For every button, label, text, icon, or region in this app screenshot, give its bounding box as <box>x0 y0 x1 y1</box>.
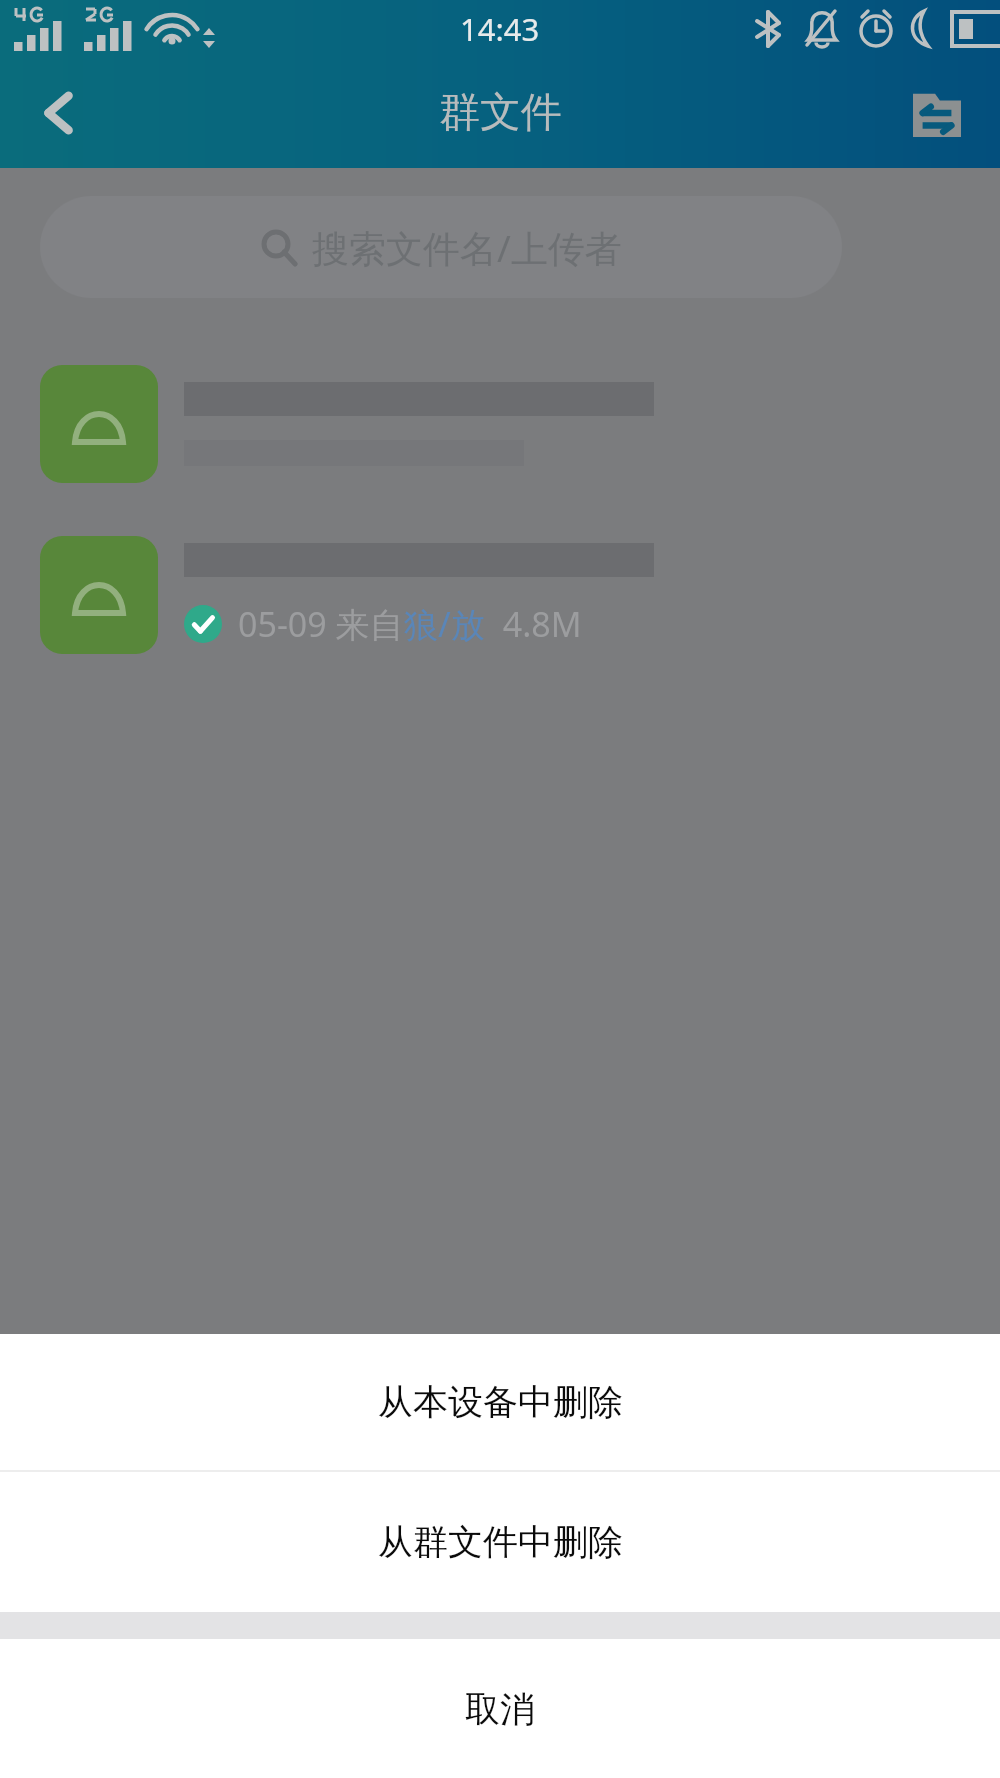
staticText: 14:43 <box>460 8 540 50</box>
button[interactable]: 取消 <box>0 1639 1000 1778</box>
staticText: 群文件 <box>439 87 562 139</box>
staticText: 05-09 来自 <box>238 601 404 647</box>
staticText: 从群文件中删除 <box>378 1520 623 1564</box>
staticText: 取消 <box>465 1687 535 1731</box>
button[interactable]: 搜索文件名/上传者 <box>40 196 842 298</box>
button[interactable]: 从本设备中删除 <box>0 1334 1000 1470</box>
staticText: 4.8M <box>485 601 582 647</box>
staticText: 狼/放 <box>404 601 485 647</box>
button[interactable]: 从群文件中删除 <box>0 1472 1000 1612</box>
button[interactable]: Transfer files <box>892 68 982 158</box>
button[interactable]: Back <box>0 58 118 168</box>
staticText: 搜索文件名/上传者 <box>312 222 622 273</box>
button[interactable] <box>40 344 1000 504</box>
staticText: 从本设备中删除 <box>378 1380 623 1424</box>
button[interactable]: 05-09 来自 <box>40 515 1000 675</box>
